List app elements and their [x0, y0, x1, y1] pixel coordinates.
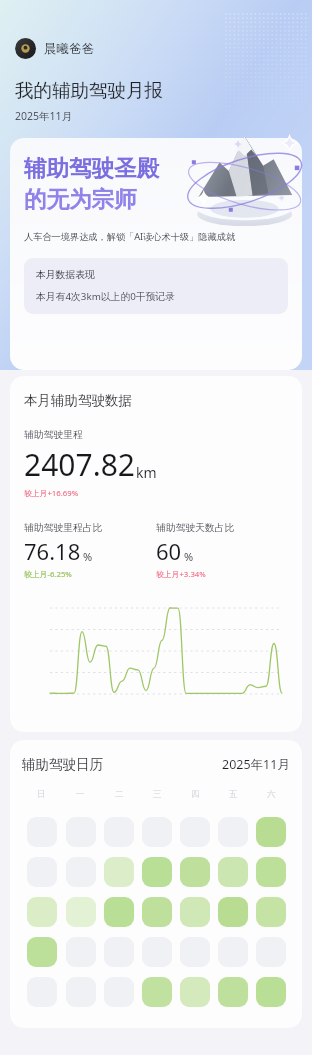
staticText: 辅助驾驶里程 [24, 429, 83, 441]
staticText: 我的辅助驾驶月报 [15, 79, 163, 102]
staticText: 四 [191, 789, 200, 800]
button[interactable]: 辅助驾驶天数占比 [156, 522, 288, 580]
staticText: 的无为宗师 [24, 185, 137, 213]
button[interactable]: 辅助驾驶日历 [10, 740, 302, 1028]
button[interactable] [66, 897, 96, 927]
button[interactable] [27, 977, 57, 1007]
staticText: 辅助驾驶里程占比 [24, 522, 103, 534]
button[interactable] [180, 817, 210, 847]
button[interactable] [218, 857, 248, 887]
staticText: % [83, 549, 93, 564]
staticText: 较上月+3.34% [156, 569, 206, 580]
button[interactable] [142, 897, 172, 927]
staticText: 一 [76, 789, 85, 800]
button[interactable] [104, 937, 134, 967]
button[interactable] [27, 937, 57, 967]
button[interactable]: 晨曦爸爸 [15, 36, 102, 61]
button[interactable] [142, 977, 172, 1007]
staticText: 本月辅助驾驶数据 [24, 392, 132, 409]
staticText: 二 [115, 789, 124, 800]
button[interactable] [104, 857, 134, 887]
button[interactable] [180, 937, 210, 967]
button[interactable]: 本月数据表现 [24, 258, 288, 314]
button[interactable] [256, 897, 286, 927]
button[interactable] [218, 977, 248, 1007]
button[interactable] [218, 817, 248, 847]
button[interactable] [66, 857, 96, 887]
staticText: 辅助驾驶圣殿 [24, 154, 159, 182]
staticText: 日 [37, 789, 46, 800]
other: 成就徽章插图 [176, 130, 308, 238]
staticText: 较上月-6.25% [24, 569, 72, 580]
button[interactable] [180, 857, 210, 887]
button[interactable] [256, 937, 286, 967]
staticText: 较上月+16.69% [24, 488, 79, 499]
staticText: 2025年11月 [222, 756, 290, 773]
button[interactable] [218, 937, 248, 967]
staticText: 人车合一境界达成，解锁「AI读心术十级」隐藏成就 [24, 230, 236, 243]
staticText: 晨曦爸爸 [44, 41, 94, 57]
button[interactable] [180, 897, 210, 927]
staticText: 五 [229, 789, 238, 800]
staticText: 辅助驾驶日历 [22, 756, 103, 773]
staticText: 三 [153, 789, 162, 800]
staticText: % [184, 549, 194, 564]
staticText: 76.18 [24, 536, 81, 566]
button[interactable] [142, 817, 172, 847]
button[interactable] [27, 897, 57, 927]
staticText: km [136, 463, 157, 482]
button[interactable] [27, 817, 57, 847]
staticText: 六 [267, 789, 276, 800]
staticText: 2025年11月 [15, 109, 73, 123]
button[interactable]: 辅助驾驶圣殿 [10, 138, 302, 370]
button[interactable]: 本月辅助驾驶数据 [10, 376, 302, 732]
button[interactable] [256, 857, 286, 887]
button[interactable] [104, 977, 134, 1007]
button[interactable] [66, 937, 96, 967]
button[interactable]: 辅助驾驶里程占比 [24, 522, 156, 580]
staticText: 2407.82 [24, 444, 135, 485]
staticText: 60 [156, 536, 182, 566]
button[interactable] [104, 897, 134, 927]
button[interactable] [104, 817, 134, 847]
button[interactable] [218, 897, 248, 927]
button[interactable] [142, 937, 172, 967]
button[interactable] [66, 977, 96, 1007]
staticText: 辅助驾驶天数占比 [156, 522, 235, 534]
staticText: 本月数据表现 [36, 269, 95, 281]
button[interactable] [66, 817, 96, 847]
button[interactable] [180, 977, 210, 1007]
staticText: 本月有4次3km以上的0干预记录 [36, 290, 175, 303]
button[interactable] [256, 817, 286, 847]
button[interactable] [142, 857, 172, 887]
button[interactable] [27, 857, 57, 887]
button[interactable] [256, 977, 286, 1007]
